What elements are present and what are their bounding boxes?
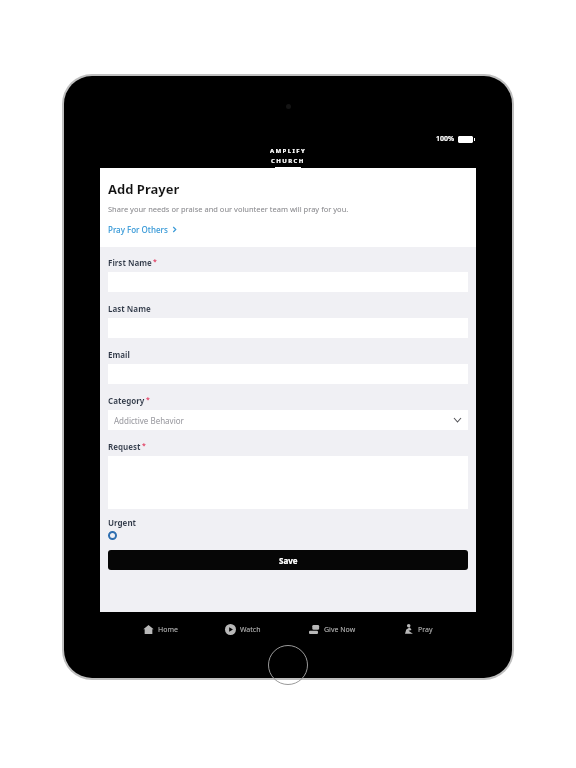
staticText: Request — [108, 441, 141, 452]
staticText: * — [146, 395, 150, 405]
other: Home — [143, 624, 154, 635]
staticText: Give Now — [324, 625, 356, 635]
other: Pray — [403, 624, 414, 635]
staticText: Urgent — [108, 517, 137, 528]
staticText: Add Prayer — [108, 180, 180, 198]
button[interactable]: Home — [139, 620, 182, 639]
staticText: First Name — [108, 257, 152, 268]
staticText: Watch — [240, 625, 261, 635]
staticText: CHURCH — [271, 157, 305, 165]
button[interactable]: Addictive Behavior — [108, 410, 468, 430]
other: Give Now — [309, 624, 320, 635]
staticText: Home — [158, 625, 178, 635]
staticText: Category — [108, 395, 145, 406]
button[interactable]: Save — [108, 550, 468, 570]
staticText: Save — [279, 555, 298, 566]
button[interactable]: Pray — [399, 620, 437, 639]
staticText: Share your needs or praise and our volun… — [108, 204, 349, 214]
staticText: * — [153, 257, 157, 267]
staticText: AMPLIFY — [270, 147, 307, 155]
staticText: Addictive Behavior — [114, 415, 184, 426]
staticText: Last Name — [108, 303, 151, 314]
staticText: Pray — [418, 625, 433, 635]
staticText: 100% — [436, 134, 455, 144]
button[interactable]: Home button — [268, 645, 308, 685]
button[interactable]: Watch — [221, 620, 265, 639]
button[interactable]: Give Now — [305, 620, 360, 639]
button[interactable]: Urgent toggle — [108, 531, 117, 540]
staticText: Pray For Others — [108, 224, 168, 235]
staticText: * — [142, 441, 146, 451]
other: Watch — [225, 624, 236, 635]
staticText: Email — [108, 349, 130, 360]
button[interactable]: Pray For Others — [108, 224, 177, 235]
